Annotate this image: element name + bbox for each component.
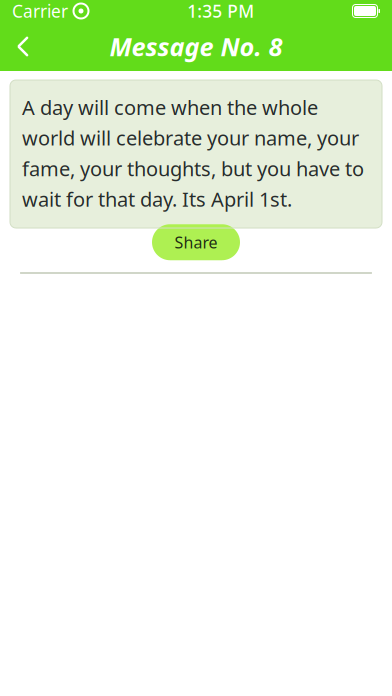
- staticText: 1:35 PM: [187, 0, 254, 22]
- staticText: Carrier: [12, 0, 68, 22]
- button[interactable]: Share: [152, 224, 240, 260]
- staticText: Message No. 8: [109, 30, 282, 63]
- staticText: A day will come when the whole world wil…: [22, 94, 364, 212]
- staticText: Share: [174, 232, 217, 253]
- button[interactable]: Back: [0, 22, 46, 71]
